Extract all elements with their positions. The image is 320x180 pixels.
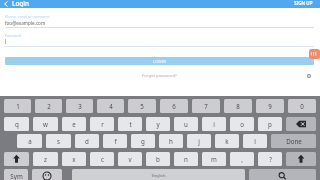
button[interactable]: r: [90, 117, 114, 131]
staticText: foo@example.com: [5, 20, 46, 26]
staticText: 6: [172, 102, 176, 110]
button[interactable]: z: [33, 152, 58, 166]
staticText: j: [198, 137, 200, 145]
staticText: 2: [47, 102, 51, 110]
button[interactable]: English: [72, 169, 245, 180]
button[interactable]: c: [90, 152, 114, 166]
button[interactable]: h: [159, 134, 183, 148]
button[interactable]: SIGN UP: [294, 0, 320, 8]
staticText: v: [128, 155, 132, 163]
staticText: s: [57, 137, 60, 145]
button[interactable]: q: [4, 117, 29, 131]
button[interactable]: m: [202, 152, 226, 166]
button[interactable]: s: [46, 134, 71, 148]
staticText: 8: [236, 102, 240, 110]
staticText: 0: [300, 102, 304, 110]
button[interactable]: b: [146, 152, 170, 166]
staticText: 4: [109, 102, 113, 110]
staticText: t: [129, 120, 132, 128]
staticText: n: [184, 155, 188, 163]
button[interactable]: 3: [66, 99, 93, 113]
staticText: l: [254, 137, 256, 145]
button[interactable]: Back: [0, 0, 12, 8]
staticText: y: [156, 120, 160, 128]
staticText: Sym: [10, 172, 23, 180]
button[interactable]: j: [187, 134, 211, 148]
staticText: m: [211, 155, 217, 163]
staticText: c: [101, 155, 104, 163]
button[interactable]: Done: [271, 134, 316, 148]
staticText: x: [72, 155, 76, 163]
button[interactable]: k: [215, 134, 239, 148]
button[interactable]: 9: [256, 99, 284, 113]
button[interactable]: Autofill password: [309, 49, 320, 59]
button[interactable]: 0: [288, 99, 316, 113]
staticText: LOGIN: [153, 58, 167, 64]
staticText: 1: [16, 102, 20, 110]
button[interactable]: d: [75, 134, 99, 148]
staticText: i: [213, 120, 215, 128]
button[interactable]: i: [202, 117, 226, 131]
button[interactable]: f: [103, 134, 127, 148]
button[interactable]: 2: [35, 99, 62, 113]
staticText: p: [268, 120, 272, 128]
staticText: o: [240, 120, 244, 128]
button[interactable]: Backspace: [286, 117, 316, 131]
button[interactable]: w: [33, 117, 58, 131]
button[interactable]: Caps lock: [286, 152, 316, 166]
staticText: English: [151, 173, 166, 179]
staticText: Phone, email or username: [5, 14, 50, 19]
button[interactable]: u: [174, 117, 198, 131]
button[interactable]: 4: [97, 99, 124, 113]
staticText: ?: [269, 155, 272, 163]
button[interactable]: Settings: [305, 72, 313, 80]
button[interactable]: a: [17, 134, 42, 148]
button[interactable]: ,: [230, 152, 254, 166]
staticText: Forgot password?: [142, 73, 177, 79]
button[interactable]: l: [243, 134, 267, 148]
button[interactable]: v: [118, 152, 142, 166]
staticText: w: [43, 120, 48, 128]
staticText: Done: [286, 137, 302, 145]
button[interactable]: n: [174, 152, 198, 166]
button[interactable]: Sym: [4, 169, 28, 180]
staticText: q: [15, 120, 19, 128]
staticText: 9: [268, 102, 272, 110]
staticText: u: [184, 120, 188, 128]
staticText: SIGN UP: [294, 0, 313, 6]
staticText: a: [28, 137, 32, 145]
button[interactable]: e: [62, 117, 86, 131]
button[interactable]: g: [131, 134, 155, 148]
staticText: 7: [204, 102, 208, 110]
button[interactable]: o: [230, 117, 254, 131]
staticText: Password: [5, 33, 22, 38]
button[interactable]: Search: [249, 169, 316, 180]
button[interactable]: Shift: [4, 152, 29, 166]
button[interactable]: t: [118, 117, 142, 131]
staticText: g: [141, 137, 145, 145]
staticText: h: [169, 137, 173, 145]
staticText: Login: [12, 0, 30, 7]
staticText: e: [72, 120, 76, 128]
staticText: k: [225, 137, 229, 145]
button[interactable]: 7: [192, 99, 220, 113]
button[interactable]: LOGIN: [5, 57, 314, 65]
button[interactable]: 5: [128, 99, 156, 113]
button[interactable]: p: [258, 117, 282, 131]
staticText: 3: [78, 102, 82, 110]
button[interactable]: 1: [4, 99, 31, 113]
staticText: 5: [140, 102, 144, 110]
staticText: ,: [241, 155, 243, 163]
staticText: r: [101, 120, 104, 128]
button[interactable]: Emoji: [32, 169, 62, 180]
button[interactable]: Forgot password?: [142, 73, 177, 79]
button[interactable]: ?: [258, 152, 282, 166]
staticText: d: [85, 137, 89, 145]
staticText: z: [44, 155, 47, 163]
button[interactable]: 8: [224, 99, 252, 113]
button[interactable]: y: [146, 117, 170, 131]
staticText: b: [156, 155, 160, 163]
button[interactable]: x: [62, 152, 86, 166]
staticText: f: [114, 137, 117, 145]
button[interactable]: 6: [160, 99, 188, 113]
